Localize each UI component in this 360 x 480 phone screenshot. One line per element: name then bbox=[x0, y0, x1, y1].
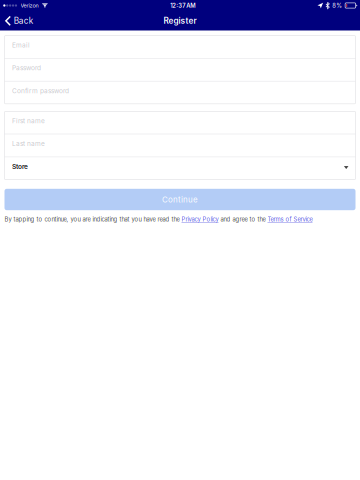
button[interactable]: Password bbox=[4, 59, 355, 81]
staticText: Last name bbox=[12, 140, 45, 148]
staticText: First name bbox=[12, 117, 45, 125]
staticText: Email bbox=[12, 41, 30, 49]
staticText: By tapping to continue, you are indicati… bbox=[4, 216, 181, 223]
staticText: Privacy Policy bbox=[181, 216, 218, 223]
staticText: Password bbox=[12, 64, 41, 72]
staticText: Register bbox=[163, 16, 196, 26]
staticText: and agree to the bbox=[218, 216, 267, 223]
staticText: Verizon bbox=[20, 2, 38, 9]
staticText: 8% bbox=[332, 2, 342, 9]
button[interactable]: Back bbox=[0, 11, 60, 31]
button[interactable]: Privacy Policy bbox=[181, 216, 218, 223]
staticText: Terms of Service bbox=[267, 216, 312, 223]
staticText: Back bbox=[14, 16, 34, 26]
staticText: Continue bbox=[162, 195, 198, 204]
staticText: Store bbox=[12, 163, 28, 170]
button[interactable]: Terms of Service bbox=[267, 216, 312, 223]
button[interactable]: First name bbox=[4, 111, 355, 134]
staticText: Confirm password bbox=[12, 87, 69, 95]
button[interactable]: Confirm password bbox=[4, 81, 355, 104]
button[interactable]: Last name bbox=[4, 134, 355, 157]
button[interactable]: Continue bbox=[4, 189, 355, 210]
button[interactable]: Store bbox=[4, 157, 355, 179]
staticText: 12:37 AM bbox=[170, 2, 195, 9]
